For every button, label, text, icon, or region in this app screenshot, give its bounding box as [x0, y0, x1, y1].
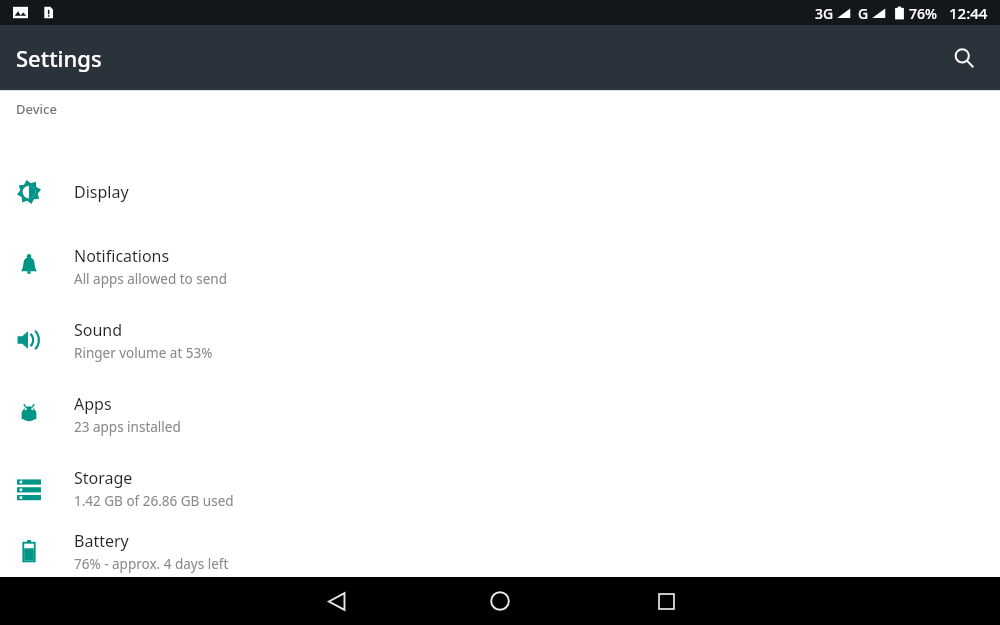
staticText: Sound	[74, 319, 123, 341]
staticText: G	[858, 4, 869, 23]
button[interactable]: Search	[940, 34, 988, 82]
staticText: Notifications	[74, 245, 170, 267]
button[interactable]: Home	[474, 577, 526, 625]
button[interactable]: Display	[0, 155, 1000, 229]
staticText: Settings	[16, 43, 102, 73]
staticText: Storage	[74, 467, 133, 489]
staticText: Display	[74, 181, 129, 203]
button[interactable]: Back	[310, 577, 362, 625]
staticText: Device	[16, 100, 57, 118]
staticText: 76%	[909, 4, 937, 23]
staticText: 12:44	[949, 3, 988, 23]
staticText: 3G	[815, 4, 834, 23]
staticText: 23 apps installed	[74, 418, 181, 436]
staticText: 1.42 GB of 26.86 GB used	[74, 492, 234, 510]
staticText: All apps allowed to send	[74, 270, 228, 288]
button[interactable]: Apps	[0, 377, 1000, 451]
button[interactable]: Storage	[0, 451, 1000, 525]
staticText: Apps	[74, 393, 112, 415]
button[interactable]: Battery	[0, 525, 1000, 577]
button[interactable]: Notifications	[0, 229, 1000, 303]
staticText: Battery	[74, 530, 129, 552]
staticText: Ringer volume at 53%	[74, 344, 213, 362]
button[interactable]: Recent apps	[640, 577, 692, 625]
button[interactable]: Sound	[0, 303, 1000, 377]
staticText: 76% - approx. 4 days left	[74, 555, 229, 573]
